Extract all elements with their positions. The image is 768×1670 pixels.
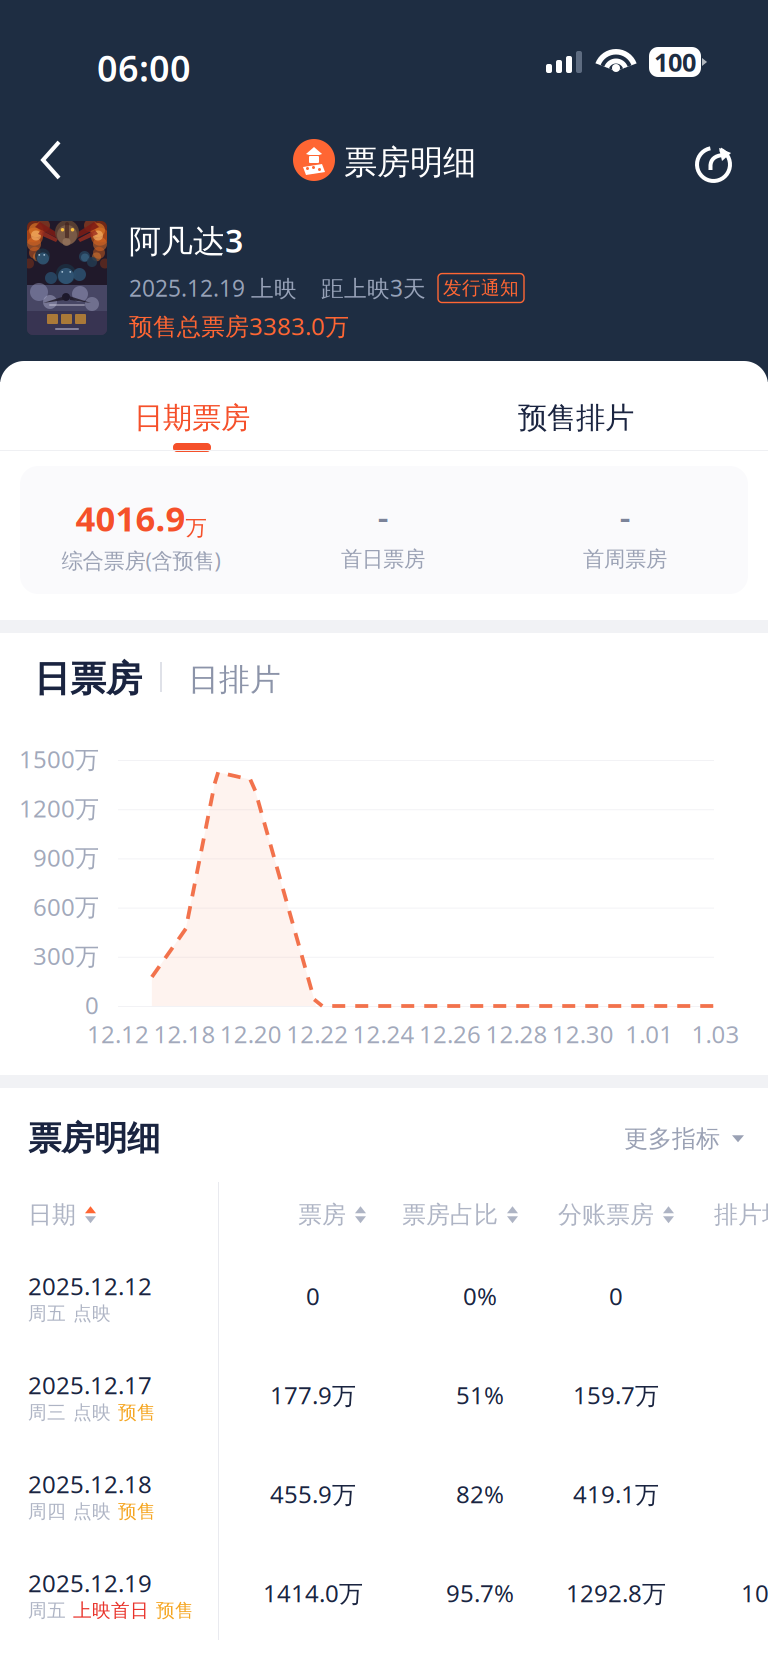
staticText: 1200万 xyxy=(19,792,99,824)
staticText: 51% xyxy=(456,1379,504,1411)
staticText: 419.1万 xyxy=(573,1478,659,1510)
staticText: 分账票房 xyxy=(558,1200,654,1229)
staticText: 177.9万 xyxy=(270,1379,356,1411)
staticText: 万 xyxy=(185,515,206,541)
staticText: 点映 xyxy=(73,1401,111,1424)
staticText: 0 xyxy=(85,989,99,1021)
staticText: 点映 xyxy=(73,1302,111,1325)
staticText: 日期票房 xyxy=(134,400,250,436)
staticText: 周四 xyxy=(28,1500,66,1523)
staticText: 阿凡达3 xyxy=(129,219,243,261)
staticText: 预售总票房3383.0万 xyxy=(129,310,349,342)
staticText: 发行通知 xyxy=(443,277,519,299)
staticText: 上映首日 xyxy=(73,1599,149,1622)
staticText: 900万 xyxy=(33,841,99,873)
staticText: 周五 xyxy=(28,1599,66,1622)
staticText: 12.24 xyxy=(353,1018,415,1050)
staticText: 排片场 xyxy=(714,1200,768,1229)
staticText: 预售 xyxy=(118,1401,156,1424)
button[interactable]: 更多指标 xyxy=(624,1124,744,1153)
staticText: - xyxy=(377,493,388,539)
staticText: 06:00 xyxy=(97,44,191,92)
staticText: 4016.9 xyxy=(75,495,185,541)
staticText: 票房明细 xyxy=(344,142,476,183)
staticText: 82% xyxy=(456,1478,504,1510)
staticText: 600万 xyxy=(33,891,99,923)
staticText: 12.30 xyxy=(552,1018,614,1050)
staticText: 2025.12.12 xyxy=(28,1270,152,1302)
staticText: 距上映3天 xyxy=(321,273,426,303)
staticText: 300万 xyxy=(33,940,99,972)
staticText: 103 xyxy=(741,1577,768,1609)
staticText: 12.26 xyxy=(419,1018,481,1050)
button[interactable]: Back xyxy=(20,128,84,192)
staticText: 2025.12.19 xyxy=(28,1567,152,1599)
staticText: 0 xyxy=(609,1280,623,1312)
staticText: 周五 xyxy=(28,1302,66,1325)
staticText: 0% xyxy=(463,1280,497,1312)
staticText: - xyxy=(619,493,630,539)
staticText: 票房 xyxy=(298,1200,346,1229)
staticText: 日票房 xyxy=(34,657,142,701)
staticText: 预售 xyxy=(156,1599,194,1622)
staticText: 首周票房 xyxy=(583,546,667,572)
staticText: 票房明细 xyxy=(28,1118,160,1159)
staticText: 日期 xyxy=(28,1200,76,1229)
staticText: 综合票房(含预售) xyxy=(61,546,220,574)
button[interactable]: 日票房 xyxy=(34,657,142,701)
staticText: 更多指标 xyxy=(624,1124,720,1153)
staticText: 首日票房 xyxy=(341,546,425,572)
button[interactable]: 日期票房 xyxy=(0,384,384,452)
button[interactable]: 日期 xyxy=(28,1200,96,1229)
staticText: 1.01 xyxy=(625,1018,673,1050)
staticText: 12.28 xyxy=(485,1018,547,1050)
staticText: 日排片 xyxy=(188,661,281,699)
staticText: 95.7% xyxy=(446,1577,514,1609)
staticText: 12.20 xyxy=(220,1018,282,1050)
button[interactable]: 分账票房 xyxy=(558,1200,674,1229)
staticText: 2025.12.19 上映 xyxy=(129,273,297,303)
button[interactable]: Share xyxy=(681,138,745,190)
button[interactable]: 日排片 xyxy=(188,661,281,699)
staticText: 100 xyxy=(654,45,696,79)
staticText: 1292.8万 xyxy=(566,1577,666,1609)
staticText: 2025.12.17 xyxy=(28,1369,152,1401)
staticText: 点映 xyxy=(73,1500,111,1523)
staticText: 1500万 xyxy=(19,743,99,775)
staticText: 12.18 xyxy=(153,1018,215,1050)
staticText: 455.9万 xyxy=(270,1478,356,1510)
staticText: 159.7万 xyxy=(573,1379,659,1411)
button[interactable]: 预售排片 xyxy=(384,384,768,452)
staticText: 票房占比 xyxy=(402,1200,498,1229)
staticText: 12.12 xyxy=(87,1018,149,1050)
staticText: 2025.12.18 xyxy=(28,1468,152,1500)
staticText: 0 xyxy=(306,1280,320,1312)
staticText: 预售 xyxy=(118,1500,156,1523)
staticText: 1.03 xyxy=(692,1018,740,1050)
staticText: 预售排片 xyxy=(518,400,634,436)
staticText: 1414.0万 xyxy=(263,1577,363,1609)
button[interactable]: 票房 xyxy=(298,1200,366,1229)
staticText: 12.22 xyxy=(286,1018,348,1050)
button[interactable]: 票房占比 xyxy=(402,1200,518,1229)
staticText: 周三 xyxy=(28,1401,66,1424)
